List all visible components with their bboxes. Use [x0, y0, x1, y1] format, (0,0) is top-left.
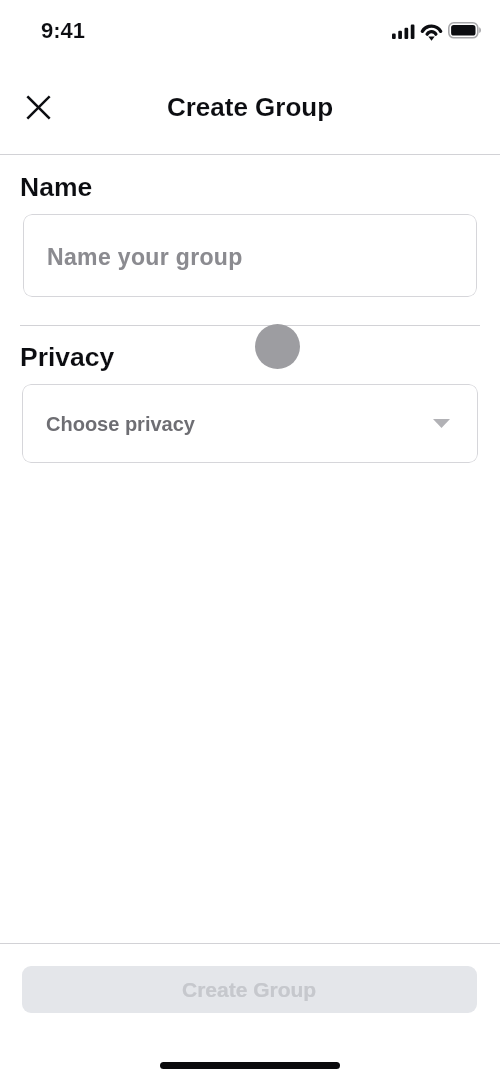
staticText: Create Group [182, 978, 317, 1001]
staticText: Create Group [0, 92, 500, 121]
button[interactable]: Choose privacy [22, 384, 478, 463]
button[interactable]: Name your group [23, 214, 477, 297]
staticText: Choose privacy [46, 413, 195, 435]
staticText: Privacy [20, 342, 115, 372]
staticText: Name [20, 172, 93, 202]
staticText: 9:41 [41, 18, 86, 43]
button[interactable]: Create Group [22, 966, 477, 1013]
staticText: Name your group [47, 244, 243, 270]
button[interactable]: Close [15, 84, 62, 131]
